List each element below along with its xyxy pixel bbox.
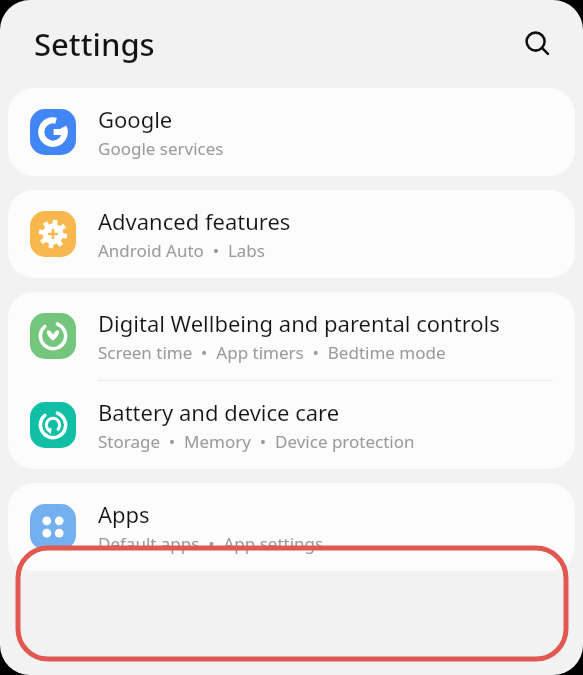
staticText: Settings	[34, 23, 155, 65]
staticText: Digital Wellbeing and parental controls	[98, 308, 500, 338]
button[interactable]: Search	[514, 20, 562, 68]
staticText: Google services	[98, 137, 224, 160]
staticText: Advanced features	[98, 206, 291, 236]
staticText: Battery and device care	[98, 397, 340, 427]
staticText: Screen time • App timers • Bedtime mode	[98, 341, 446, 364]
button[interactable]: Google	[8, 88, 575, 176]
button[interactable]: Advanced features	[8, 190, 575, 278]
staticText: Storage • Memory • Device protection	[98, 430, 415, 453]
staticText: Google	[98, 104, 173, 134]
staticText: Android Auto • Labs	[98, 239, 265, 262]
button[interactable]: Apps	[8, 483, 575, 571]
staticText: Apps	[98, 499, 150, 529]
button[interactable]: Digital Wellbeing and parental controls	[8, 292, 575, 380]
button[interactable]: Battery and device care	[8, 381, 575, 469]
staticText: Default apps • App settings	[98, 532, 324, 555]
